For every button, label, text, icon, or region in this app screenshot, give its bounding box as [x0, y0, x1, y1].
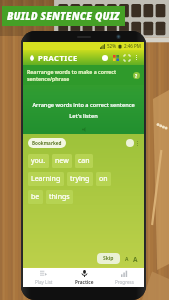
staticText: you. [31, 156, 46, 166]
button[interactable]: can [75, 154, 93, 168]
button[interactable]: new [52, 154, 72, 168]
staticText: be [31, 192, 40, 202]
button[interactable]: Record [99, 52, 110, 63]
staticText: Learning [31, 174, 61, 184]
staticText: Progress [115, 279, 134, 285]
button[interactable]: trying [67, 172, 93, 186]
staticText: can [78, 156, 90, 166]
staticText: Rearrange words to make a correct senten… [27, 68, 133, 82]
button[interactable]: Bookmarked [28, 138, 66, 148]
button[interactable]: Help [133, 72, 140, 79]
button[interactable]: Fullscreen [121, 52, 132, 63]
staticText: 52% [107, 43, 116, 49]
staticText: on [99, 174, 108, 184]
button[interactable]: Play List [23, 267, 64, 287]
button[interactable]: Increase text size [131, 255, 139, 263]
staticText: BUILD SENTENCE QUIZ [7, 9, 120, 23]
button[interactable]: More [136, 140, 139, 147]
staticText: Arrange words into a correct sentence [23, 101, 144, 109]
staticText: Skip [103, 255, 114, 262]
staticText: ? [135, 73, 138, 79]
staticText: Play List [35, 279, 53, 285]
button[interactable]: Categories [110, 52, 121, 63]
staticText: A [125, 256, 129, 263]
button[interactable]: Streak [26, 52, 37, 63]
staticText: Practice [75, 279, 94, 285]
button[interactable]: Decrease text size [123, 255, 131, 263]
button[interactable]: Bookmark [126, 139, 134, 147]
button[interactable]: Progress [104, 267, 144, 287]
staticText: new [55, 156, 69, 166]
staticText: trying [70, 174, 90, 184]
staticText: Let's listen [23, 112, 144, 120]
staticText: 2:46 PM [124, 43, 141, 49]
button[interactable]: Practice [64, 267, 104, 287]
button[interactable]: on [96, 172, 111, 186]
staticText: things [49, 192, 70, 202]
button[interactable]: be [28, 190, 43, 204]
button[interactable]: Skip [97, 253, 120, 264]
staticText: Bookmarked [32, 140, 62, 146]
button[interactable]: things [46, 190, 73, 204]
button[interactable]: Play audio [79, 124, 89, 134]
staticText: A [133, 255, 138, 263]
button[interactable]: More options [132, 53, 141, 62]
staticText: PRACTICE [38, 53, 78, 63]
button[interactable]: you. [28, 154, 49, 168]
button[interactable]: Learning [28, 172, 64, 186]
